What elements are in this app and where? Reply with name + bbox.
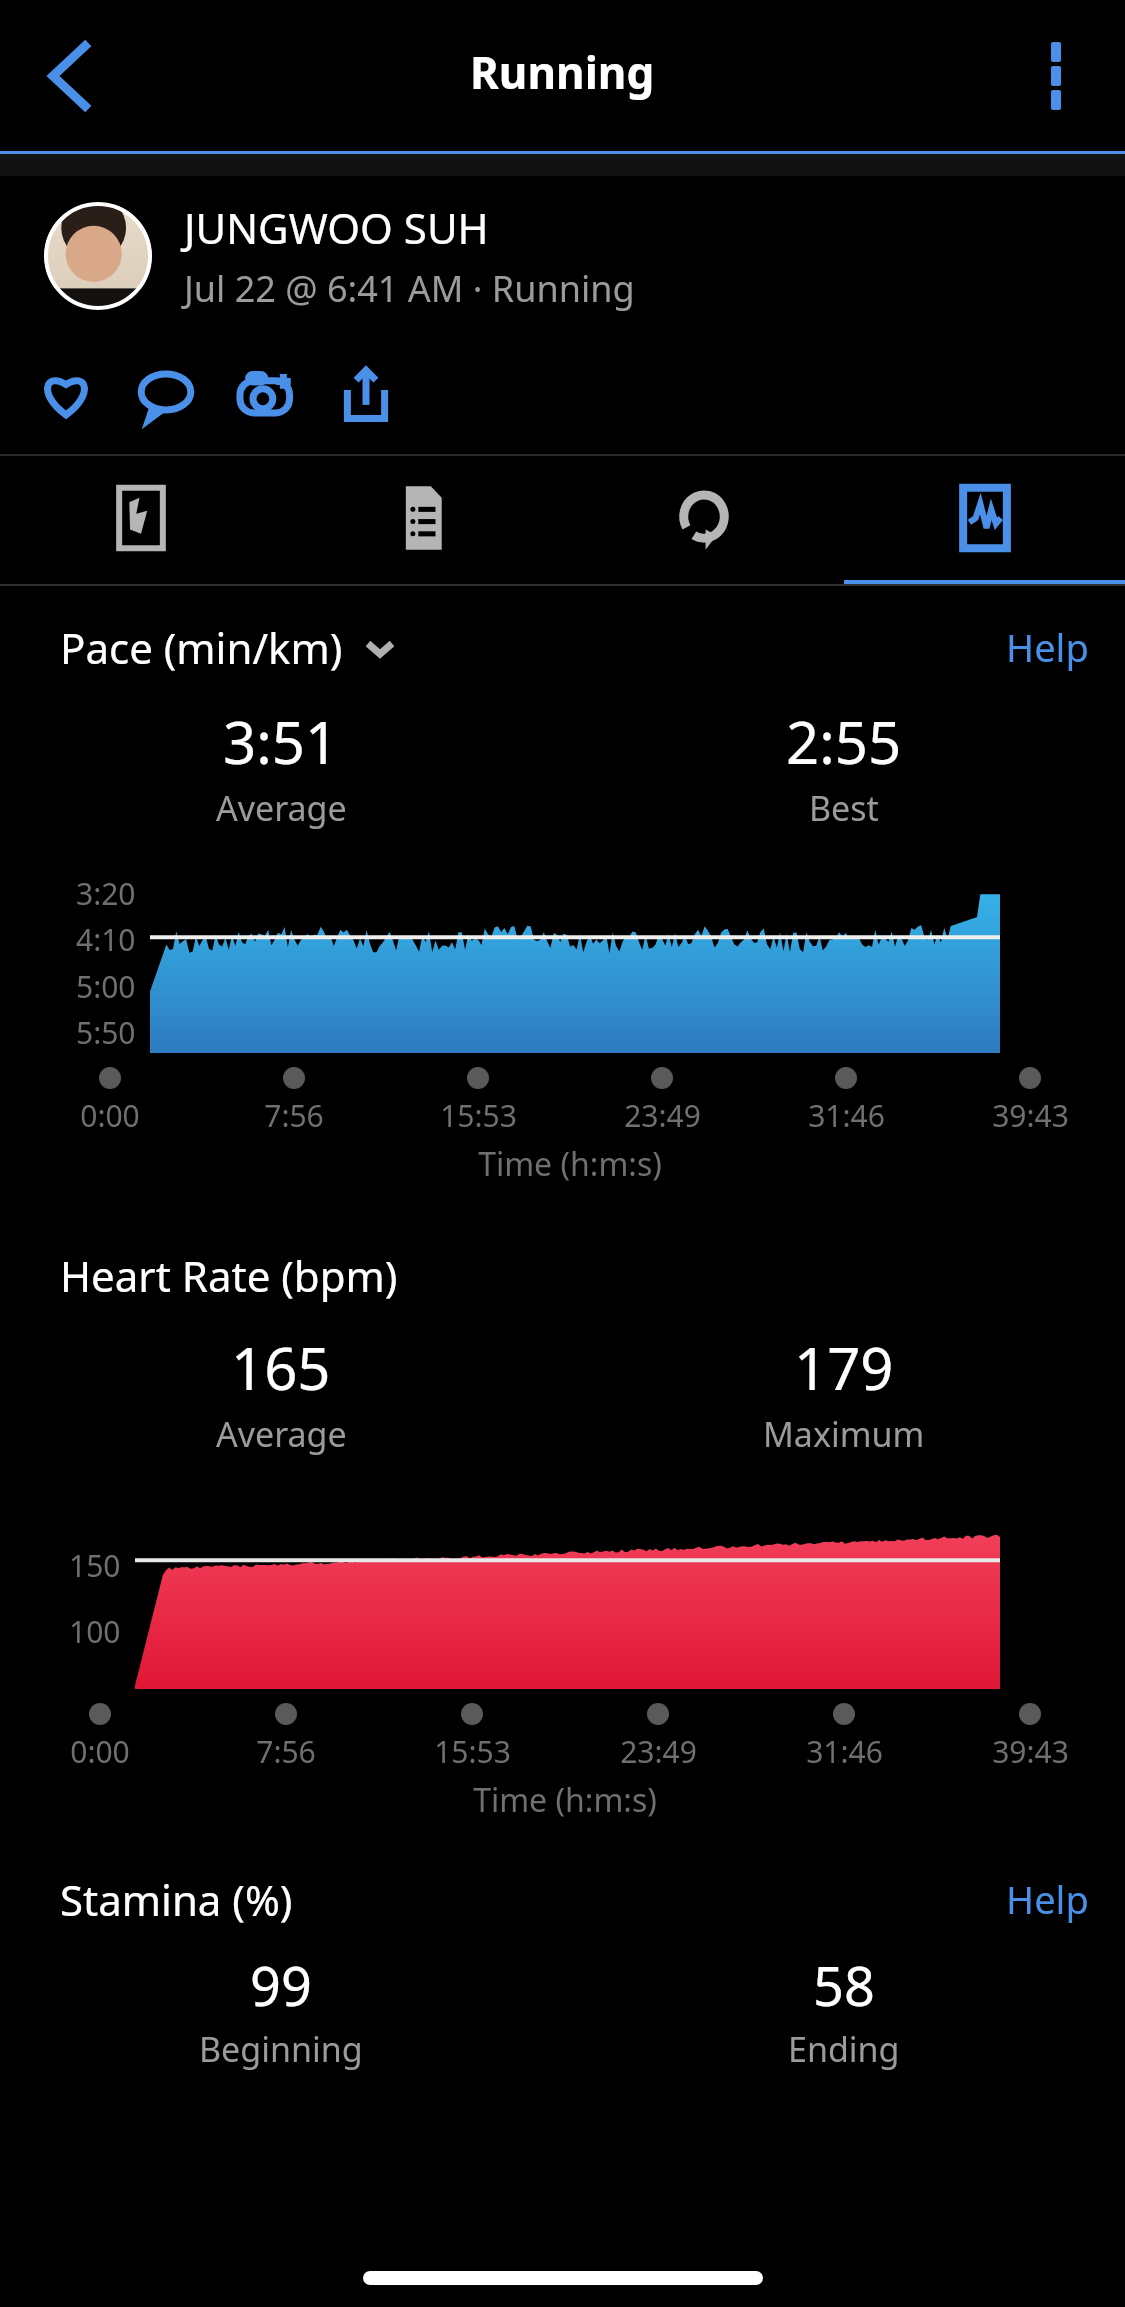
button[interactable]: More options [1011,31,1101,121]
staticText: Jul 22 @ 6:41 AM · Running [184,264,635,313]
staticText: 0:00 [70,1731,130,1772]
staticText: 100 [69,1611,121,1652]
staticText: 0:00 [80,1095,140,1136]
staticText: 31:46 [808,1095,885,1136]
button[interactable]: Add photo [216,345,316,445]
staticText: 5:00 [76,966,136,1007]
button[interactable]: Details [282,456,563,586]
staticText: 7:56 [256,1731,316,1772]
staticText: 99 [250,1948,312,2022]
button[interactable]: Comment [116,345,216,445]
staticText: 2:55 [786,702,902,781]
button[interactable]: Pace (min/km) [60,619,395,676]
staticText: 150 [69,1545,121,1586]
staticText: Pace (min/km) [60,619,343,676]
button[interactable]: Map [0,456,282,586]
staticText: Maximum [763,1411,925,1457]
staticText: Stamina (%) [60,1871,293,1928]
staticText: Help [1006,621,1089,673]
staticText: 5:50 [76,1012,136,1053]
staticText: Best [809,785,879,831]
button[interactable]: Help [1006,621,1089,673]
staticText: Beginning [199,2026,363,2072]
staticText: 3:20 [76,873,136,914]
staticText: 179 [794,1328,894,1407]
staticText: Average [216,1411,347,1457]
staticText: 4:10 [76,919,136,960]
staticText: 15:53 [440,1095,517,1136]
staticText: Time (h:m:s) [55,1142,1085,1186]
staticText: Ending [788,2026,900,2072]
staticText: Help [1006,1873,1089,1925]
staticText: 23:49 [624,1095,701,1136]
staticText: 23:49 [620,1731,697,1772]
staticText: Running [470,42,655,102]
staticText: 39:43 [992,1731,1069,1772]
button[interactable]: Back [20,28,116,124]
staticText: Heart Rate (bpm) [60,1247,398,1304]
button[interactable]: Share [316,345,416,445]
button[interactable]: Like [16,345,116,445]
button[interactable]: Charts [844,456,1125,586]
staticText: 3:51 [223,702,339,781]
staticText: Time (h:m:s) [45,1778,1085,1822]
button[interactable]: Laps [563,456,844,586]
button[interactable]: Help [1006,1873,1089,1925]
staticText: 15:53 [434,1731,511,1772]
staticText: 39:43 [992,1095,1069,1136]
staticText: 165 [231,1328,331,1407]
staticText: JUNGWOO SUH [184,199,489,256]
staticText: 58 [813,1948,875,2022]
button[interactable]: JUNGWOO SUH [0,176,1125,336]
staticText: 31:46 [806,1731,883,1772]
staticText: Average [216,785,347,831]
staticText: 7:56 [264,1095,324,1136]
